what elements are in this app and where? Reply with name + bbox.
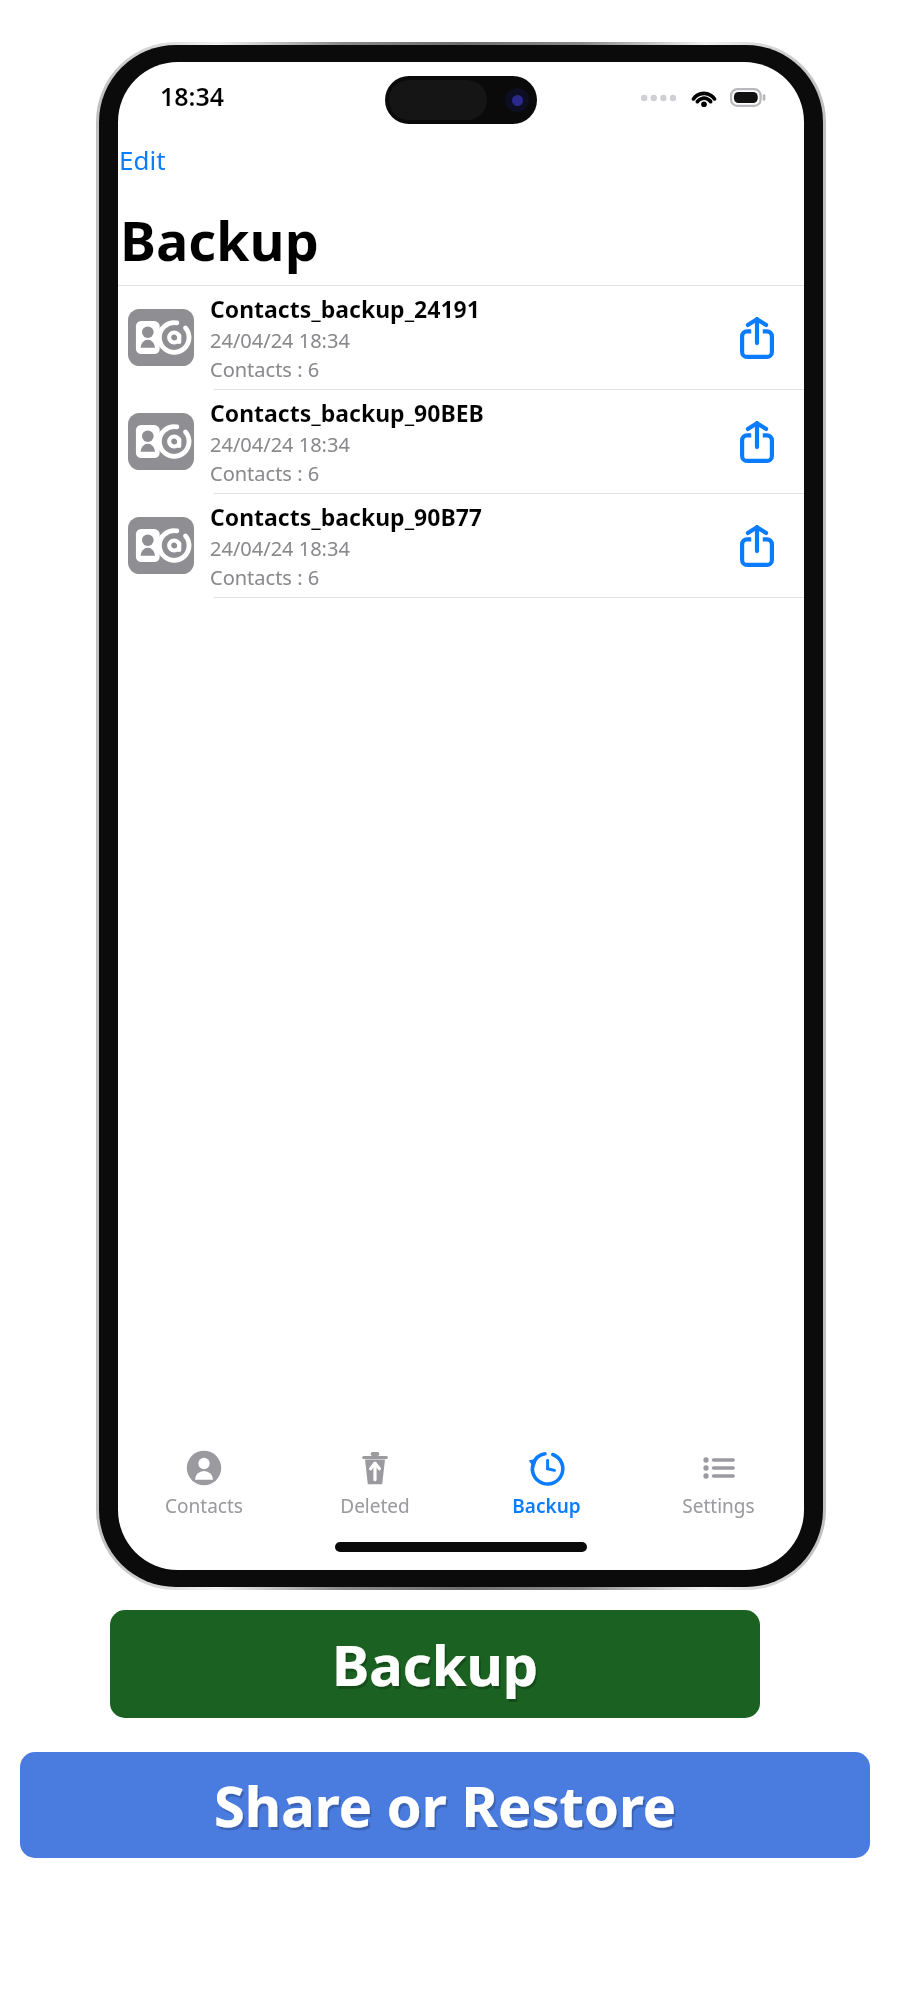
staticText: Settings	[682, 1493, 755, 1519]
button[interactable]: Edit	[118, 138, 166, 181]
button[interactable]: Share backup	[718, 405, 796, 479]
staticText: 24/04/24 18:34	[210, 431, 350, 458]
staticText: Contacts_backup_90BEB	[210, 397, 484, 428]
staticText: Contacts : 6	[210, 356, 320, 383]
staticText: 24/04/24 18:34	[210, 327, 350, 354]
staticText: Contacts	[165, 1493, 243, 1519]
button[interactable]: Contacts_backup_90B77	[118, 494, 804, 597]
staticText: Share or Restore	[216, 1770, 679, 1846]
button[interactable]: Settings	[632, 1440, 804, 1532]
staticText: Share or Restore	[214, 1767, 677, 1843]
button[interactable]: Share backup	[718, 509, 796, 583]
staticText: Contacts_backup_90B77	[210, 501, 482, 532]
staticText: 18:34	[160, 79, 225, 113]
staticText: Contacts : 6	[210, 564, 320, 591]
button[interactable]: Contacts	[118, 1440, 289, 1532]
button[interactable]: Share or Restore	[20, 1752, 870, 1858]
button[interactable]: Backup	[460, 1440, 632, 1532]
button[interactable]: Contacts_backup_24191	[118, 286, 804, 389]
staticText: Backup	[334, 1629, 541, 1705]
button[interactable]: Deleted	[289, 1440, 460, 1532]
button[interactable]: Backup	[110, 1610, 760, 1718]
staticText: 24/04/24 18:34	[210, 535, 350, 562]
staticText: Backup	[332, 1626, 539, 1702]
button[interactable]: Share backup	[718, 301, 796, 375]
staticText: Contacts_backup_24191	[210, 293, 480, 324]
staticText: Backup	[512, 1493, 581, 1519]
button[interactable]: Contacts_backup_90BEB	[118, 390, 804, 493]
staticText: Backup	[120, 203, 319, 277]
staticText: Deleted	[340, 1493, 410, 1519]
staticText: Contacts : 6	[210, 460, 320, 487]
staticText: Edit	[119, 142, 166, 177]
